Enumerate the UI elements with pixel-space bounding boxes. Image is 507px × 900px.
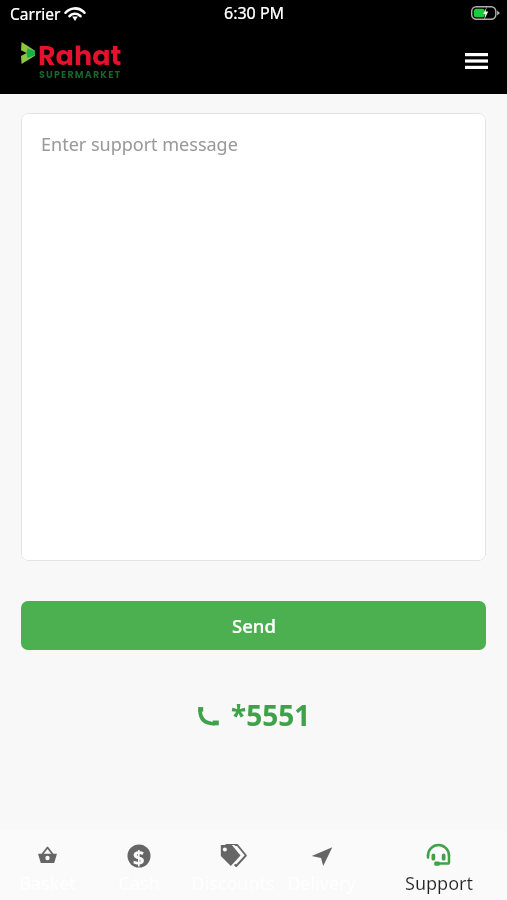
staticText: Rahat <box>38 37 122 75</box>
staticText: SUPERMARKET <box>39 68 122 81</box>
staticText: Enter support message <box>41 132 238 157</box>
button[interactable]: *5551 <box>0 696 507 734</box>
staticText: Send <box>232 613 276 638</box>
staticText: Support <box>405 871 473 896</box>
button[interactable]: $ <box>94 830 184 900</box>
staticText: 6:30 PM <box>224 2 285 24</box>
staticText: Carrier <box>10 3 61 24</box>
button[interactable]: Support <box>361 830 507 900</box>
button[interactable]: Send <box>21 601 486 650</box>
button[interactable]: Menu <box>455 40 497 82</box>
button[interactable]: Enter support message <box>21 113 486 561</box>
button[interactable]: Delivery <box>282 830 361 900</box>
button[interactable]: Basket <box>0 830 94 900</box>
button[interactable]: Discounts <box>184 830 282 900</box>
staticText: *5551 <box>231 696 311 734</box>
staticText: $ <box>133 844 145 868</box>
